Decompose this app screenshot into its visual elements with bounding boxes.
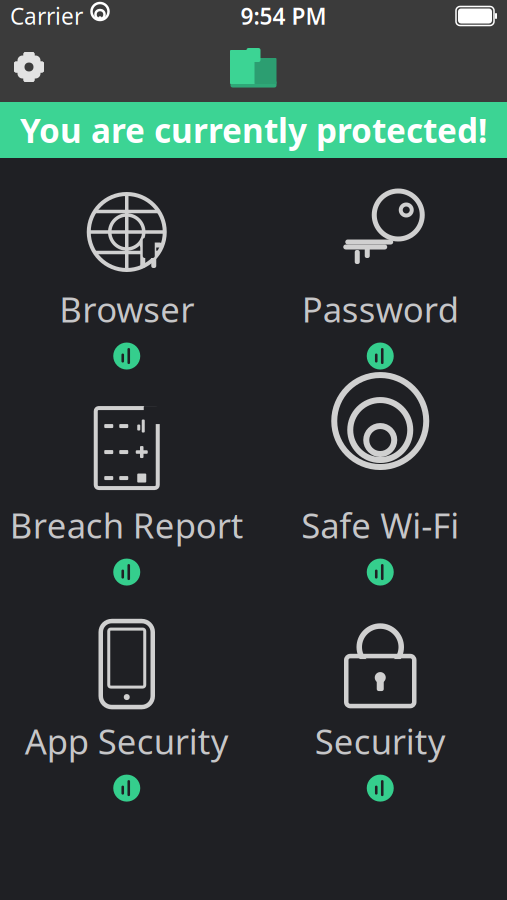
button[interactable]: Breach Report xyxy=(0,396,253,590)
staticText: Breach Report xyxy=(10,502,244,548)
button[interactable]: Settings xyxy=(0,42,58,92)
staticText: Browser xyxy=(59,286,194,332)
staticText: Password xyxy=(302,286,459,332)
staticText: Security xyxy=(315,718,446,764)
button[interactable]: Password xyxy=(253,180,507,374)
button[interactable]: Security xyxy=(253,612,507,806)
staticText: Safe Wi-Fi xyxy=(301,502,459,548)
button[interactable]: App Security xyxy=(0,612,253,806)
staticText: Carrier xyxy=(10,1,83,31)
staticText: 9:54 PM xyxy=(240,1,326,31)
staticText: You are currently protected! xyxy=(20,108,487,152)
button[interactable]: Browser xyxy=(0,180,253,374)
staticText: App Security xyxy=(25,718,229,764)
button[interactable]: Safe Wi-Fi xyxy=(253,396,507,590)
